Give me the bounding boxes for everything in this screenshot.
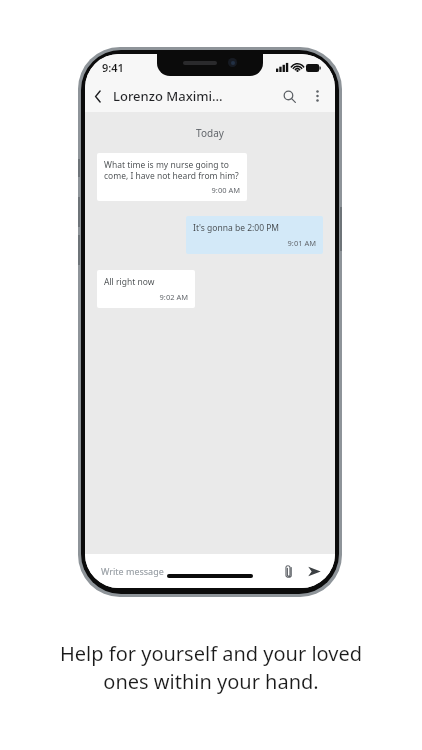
staticText: 9:41 <box>102 60 124 75</box>
button[interactable]: More options <box>303 82 331 110</box>
button[interactable]: What time is my nurse going to come, I h… <box>97 153 247 201</box>
staticText: Lorenzo Maximi... <box>113 87 275 105</box>
staticText: What time is my nurse going to come, I h… <box>104 159 239 181</box>
button[interactable]: Attach file <box>277 559 301 583</box>
staticText: It's gonna be 2:00 PM <box>193 222 280 234</box>
button[interactable]: Send <box>301 558 327 584</box>
staticText: Help for yourself and your loved ones wi… <box>24 640 398 695</box>
staticText: Today <box>85 126 335 140</box>
staticText: 9:01 AM <box>193 238 316 248</box>
staticText: All right now <box>104 276 155 288</box>
button[interactable]: Write message <box>85 554 335 588</box>
button[interactable]: All right now <box>97 270 195 308</box>
staticText: 9:02 AM <box>104 292 188 302</box>
staticText: 9:00 AM <box>104 185 240 195</box>
button[interactable]: It's gonna be 2:00 PM <box>186 216 323 254</box>
button[interactable]: Search <box>275 82 303 110</box>
button[interactable]: Back <box>85 83 111 109</box>
staticText: Write message <box>101 565 277 577</box>
